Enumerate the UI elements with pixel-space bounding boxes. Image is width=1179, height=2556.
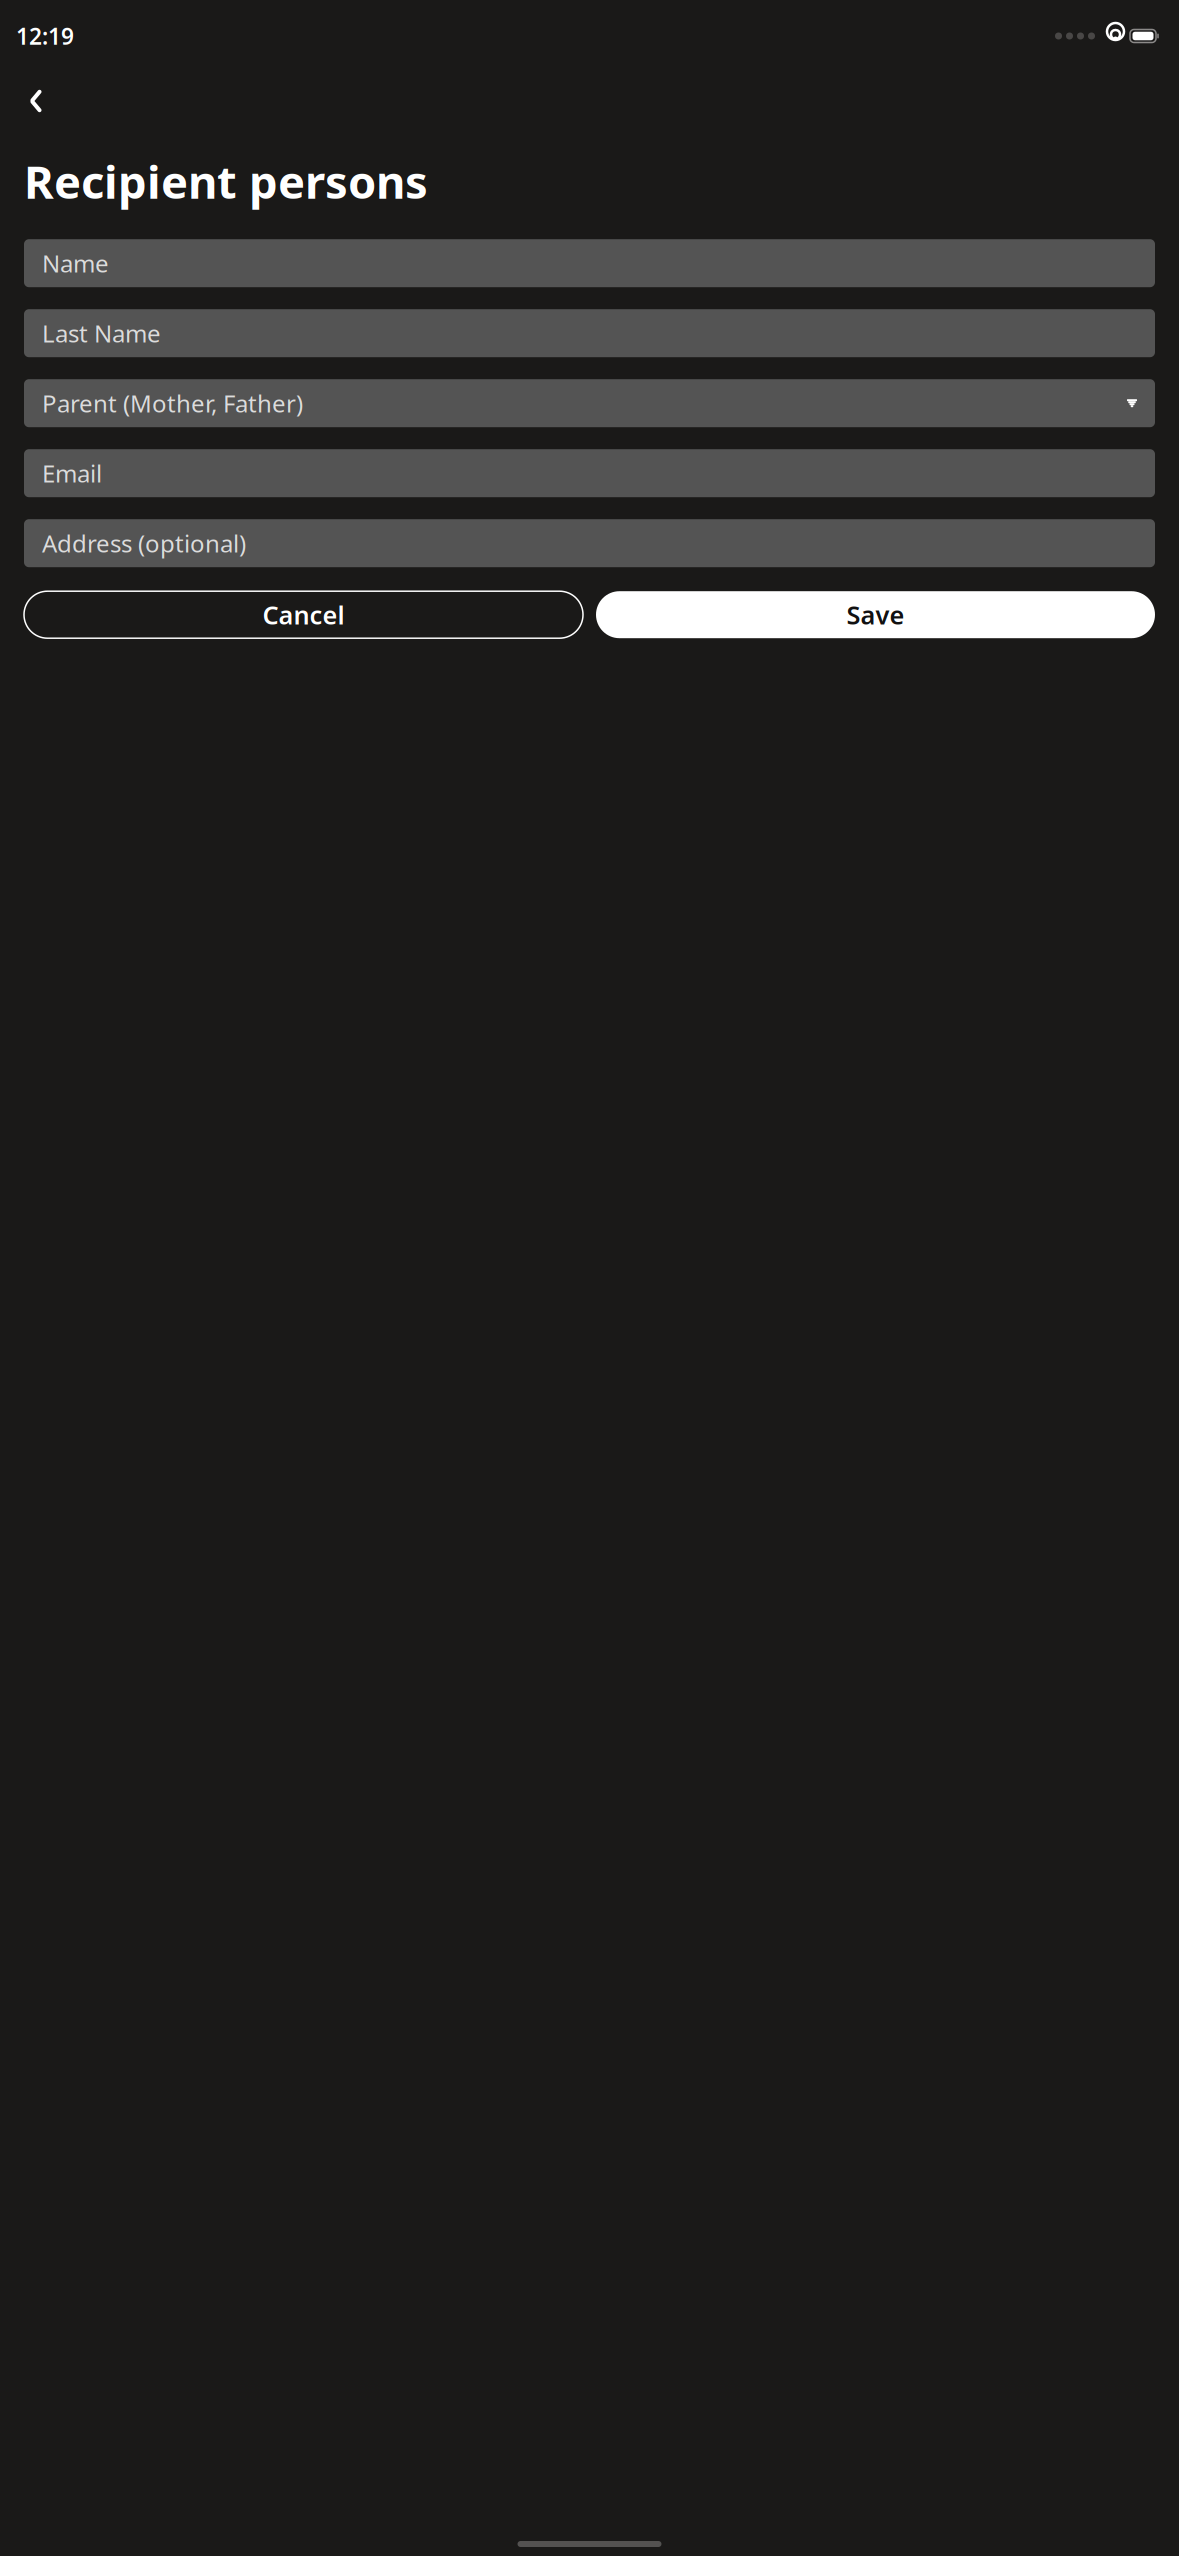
button[interactable]: Parent (Mother, Father)	[24, 379, 1155, 427]
staticText: Address (optional)	[42, 527, 246, 559]
button[interactable]: Back	[8, 73, 64, 129]
staticText: Recipient persons	[24, 151, 428, 211]
button[interactable]: Name	[24, 239, 1155, 287]
button[interactable]: Save	[596, 591, 1155, 638]
button[interactable]: Address (optional)	[24, 519, 1155, 567]
button[interactable]: Last Name	[24, 309, 1155, 357]
staticText: Name	[42, 247, 109, 279]
staticText: Last Name	[42, 317, 161, 349]
staticText: 12:19	[16, 21, 74, 51]
button[interactable]: Cancel	[24, 591, 583, 638]
staticText: Save	[846, 598, 904, 631]
staticText: Cancel	[262, 598, 344, 631]
staticText: Parent (Mother, Father)	[42, 387, 303, 419]
staticText: Email	[42, 457, 102, 489]
button[interactable]: Email	[24, 449, 1155, 497]
